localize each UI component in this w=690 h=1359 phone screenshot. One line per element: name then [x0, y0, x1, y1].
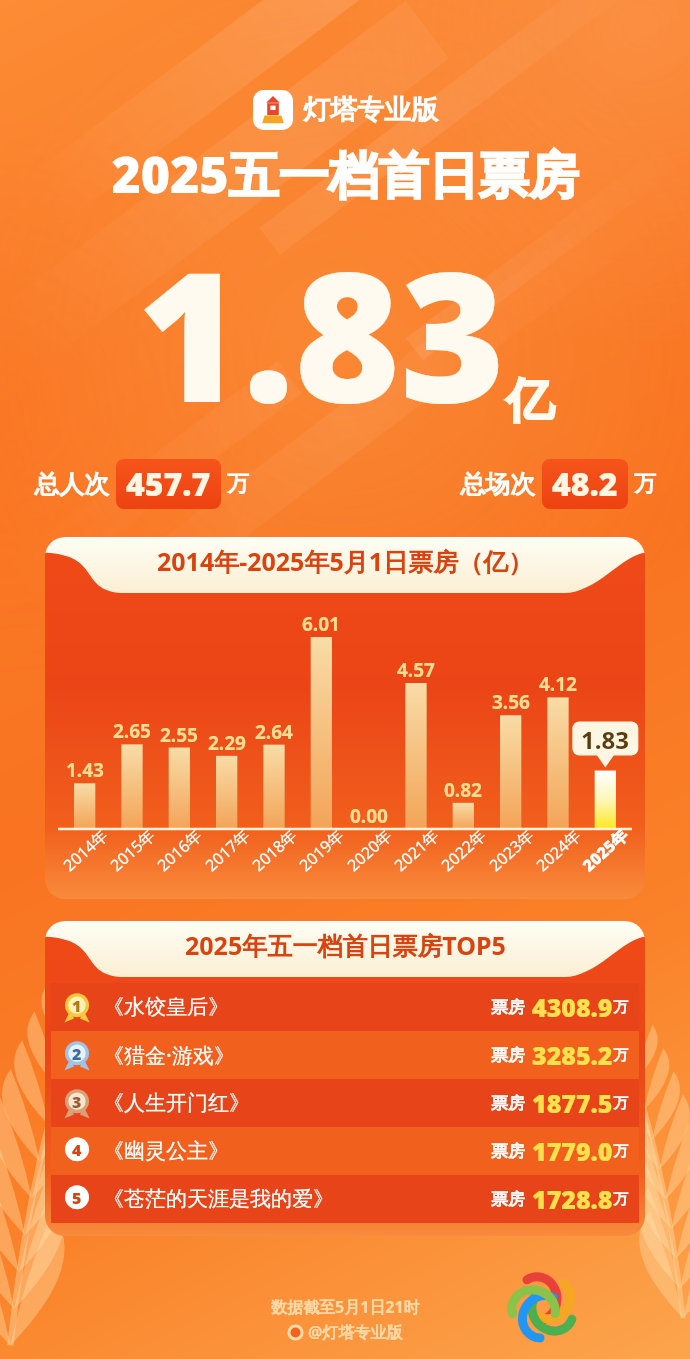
- staticText: 2024年: [531, 824, 585, 876]
- button[interactable]: 4: [62, 1127, 628, 1175]
- staticText: 2.29: [208, 730, 246, 754]
- staticText: 2.55: [160, 722, 198, 746]
- staticText: 2014年-2025年5月1日票房（亿）: [157, 544, 534, 578]
- staticText: 万: [613, 1046, 628, 1065]
- staticText: 4: [72, 1139, 82, 1161]
- staticText: 万: [613, 998, 628, 1017]
- button[interactable]: 1: [62, 983, 628, 1031]
- staticText: 票房: [491, 1045, 525, 1066]
- staticText: @灯塔专业版: [308, 1321, 403, 1343]
- staticText: 2015年: [105, 824, 159, 876]
- button[interactable]: 2025年五一档首日票房TOP5: [45, 921, 645, 1236]
- staticText: 亿: [506, 371, 554, 431]
- staticText: 票房: [491, 997, 525, 1018]
- staticText: 2023年: [484, 824, 538, 876]
- button[interactable]: 3: [62, 1079, 628, 1127]
- staticText: 万: [227, 470, 249, 498]
- staticText: 2025年五一档首日票房TOP5: [185, 928, 506, 962]
- staticText: 2.65: [113, 718, 151, 742]
- staticText: 1728.8: [532, 1182, 613, 1216]
- staticText: 2022年: [436, 824, 490, 876]
- staticText: 2018年: [247, 824, 301, 876]
- staticText: 2025五一档首日票房: [111, 140, 579, 208]
- staticText: 票房: [491, 1189, 525, 1210]
- staticText: 票房: [491, 1093, 525, 1114]
- staticText: 4.57: [397, 657, 435, 681]
- staticText: 2.64: [255, 719, 293, 743]
- other: watermark: [480, 1269, 690, 1359]
- staticText: 2021年: [389, 824, 443, 876]
- staticText: 《苍茫的天涯是我的爱》: [103, 1186, 334, 1212]
- staticText: 1877.5: [532, 1086, 613, 1120]
- button[interactable]: 2: [62, 1031, 628, 1079]
- staticText: 万: [634, 470, 656, 498]
- staticText: 2: [72, 1043, 82, 1065]
- staticText: 万: [613, 1190, 628, 1209]
- staticText: 48.2: [552, 462, 618, 506]
- staticText: 票房: [491, 1141, 525, 1162]
- other: 灯塔专业版 app icon: [253, 90, 293, 130]
- staticText: 3.56: [492, 689, 530, 713]
- staticText: 2019年: [294, 824, 348, 876]
- staticText: 1.83: [581, 723, 629, 756]
- staticText: 《人生开门红》: [103, 1090, 250, 1116]
- staticText: 5: [72, 1187, 82, 1209]
- button[interactable]: 2014年-2025年5月1日票房（亿）: [45, 537, 645, 899]
- staticText: 万: [613, 1142, 628, 1161]
- staticText: 4308.9: [532, 990, 613, 1024]
- button[interactable]: 灯塔专业版 app icon: [0, 90, 690, 130]
- staticText: 1779.0: [532, 1134, 613, 1168]
- button[interactable]: 总场次: [460, 459, 656, 509]
- staticText: 3285.2: [532, 1038, 613, 1072]
- staticText: 《幽灵公主》: [103, 1138, 229, 1164]
- staticText: 数据截至5月1日21时: [271, 1296, 420, 1318]
- button[interactable]: 总人次: [34, 459, 249, 509]
- staticText: 3: [72, 1091, 82, 1113]
- staticText: 《水饺皇后》: [103, 994, 229, 1020]
- staticText: 2016年: [152, 824, 206, 876]
- staticText: 总人次: [34, 469, 109, 500]
- staticText: 0.00: [350, 803, 388, 827]
- staticText: 0.82: [444, 777, 482, 801]
- staticText: 2020年: [342, 824, 396, 876]
- staticText: 总场次: [460, 469, 535, 500]
- staticText: 《猎金·游戏》: [103, 1041, 235, 1070]
- staticText: 2025年: [578, 824, 632, 876]
- staticText: 2017年: [200, 824, 254, 876]
- staticText: 457.7: [126, 462, 211, 506]
- staticText: 6.01: [302, 611, 340, 635]
- staticText: 1.43: [66, 757, 104, 781]
- button[interactable]: 5: [62, 1175, 628, 1223]
- staticText: 1: [72, 995, 82, 1017]
- staticText: 万: [613, 1094, 628, 1113]
- staticText: 1.83: [137, 210, 506, 455]
- staticText: 2014年: [58, 824, 112, 876]
- staticText: 4.12: [539, 671, 577, 695]
- staticText: 灯塔专业版: [303, 93, 438, 127]
